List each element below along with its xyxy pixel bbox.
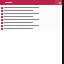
- button[interactable]: [0, 9, 62, 12]
- button[interactable]: [0, 12, 62, 15]
- button[interactable]: [0, 27, 62, 30]
- button[interactable]: [0, 24, 62, 27]
- button[interactable]: [0, 18, 62, 21]
- button[interactable]: [0, 15, 62, 18]
- button[interactable]: [0, 6, 62, 9]
- button[interactable]: [0, 21, 62, 24]
- button[interactable]: [5, 2, 12, 3]
